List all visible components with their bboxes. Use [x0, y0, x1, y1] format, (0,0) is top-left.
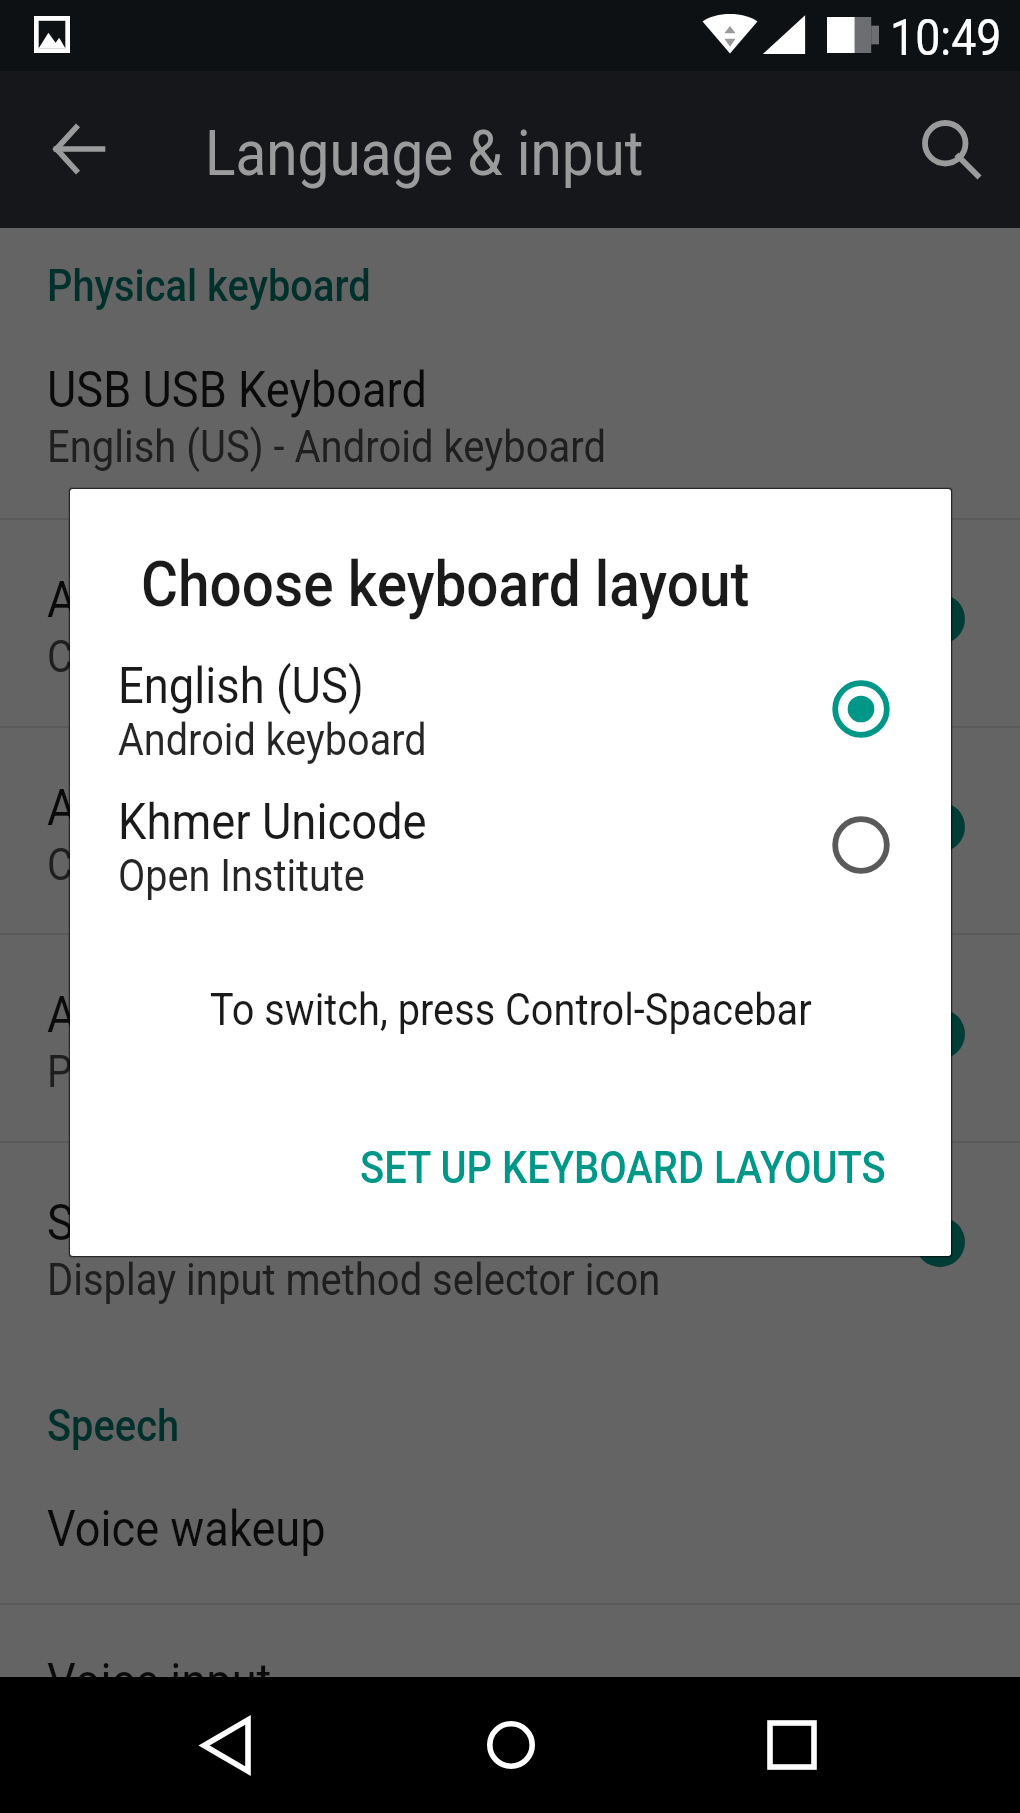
button[interactable]: SET UP KEYBOARD LAYOUTS: [314, 1106, 904, 1214]
staticText: Android keyboard: [118, 714, 427, 766]
button[interactable]: Home: [443, 1677, 579, 1813]
button[interactable]: Auto-capitalization: [0, 518, 1020, 726]
button[interactable]: English (US): [70, 636, 951, 776]
staticText: Personal dictionary: [47, 1046, 390, 1098]
staticText: Speech: [47, 1400, 179, 1452]
staticText: Auto-capitalization: [47, 570, 424, 629]
button[interactable]: Search: [900, 98, 1002, 200]
staticText: Open Institute: [118, 850, 365, 902]
staticText: USB USB Keyboard: [47, 360, 427, 419]
staticText: Capitalize the first letter: [47, 839, 469, 891]
staticText: 10:49: [890, 9, 1002, 68]
staticText: SET UP KEYBOARD LAYOUTS: [360, 1142, 886, 1194]
staticText: Auto-correction: [47, 985, 358, 1044]
staticText: Capitalize the first letter: [47, 631, 469, 683]
button[interactable]: Recent apps: [724, 1677, 860, 1813]
button[interactable]: Auto-punctuate: [0, 726, 1020, 934]
staticText: To switch, press Control-Spacebar: [210, 984, 812, 1036]
staticText: Show correction: [47, 1193, 374, 1252]
button[interactable]: Navigate up: [31, 101, 127, 197]
staticText: Auto-punctuate: [47, 778, 356, 837]
staticText: Voice input: [47, 1652, 272, 1711]
staticText: Voice wakeup: [47, 1499, 326, 1558]
staticText: Display input method selector icon: [47, 1254, 661, 1306]
staticText: Language & input: [205, 116, 643, 190]
button[interactable]: Auto-correction: [0, 933, 1020, 1141]
button[interactable]: Show correction: [0, 1141, 1020, 1349]
button[interactable]: Back: [158, 1677, 294, 1813]
staticText: Choose keyboard layout: [141, 547, 750, 621]
staticText: Khmer Unicode: [118, 792, 427, 851]
staticText: Physical keyboard: [47, 260, 371, 312]
button[interactable]: Khmer Unicode: [70, 772, 951, 912]
staticText: English (US): [118, 656, 364, 715]
staticText: English (US) - Android keyboard: [47, 421, 606, 473]
